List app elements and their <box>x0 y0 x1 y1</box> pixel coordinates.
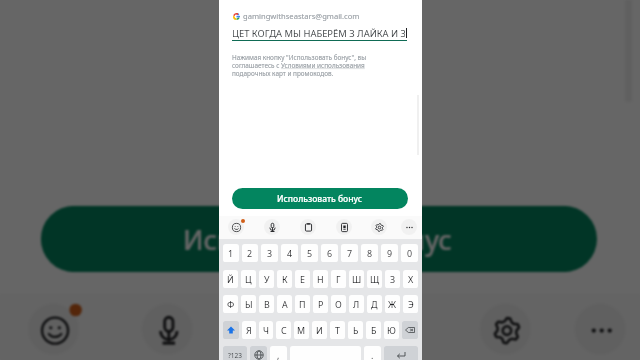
staticText: Р <box>318 298 324 310</box>
button[interactable]: Ы <box>241 295 256 313</box>
staticText: Ц <box>245 273 252 285</box>
staticText: Использовать бонус <box>277 193 363 205</box>
button[interactable]: Stickers <box>333 216 355 238</box>
staticText: 0 <box>407 247 413 259</box>
button[interactable]: Ш <box>349 270 364 288</box>
button[interactable]: Ч <box>259 321 273 339</box>
staticText: Д <box>371 298 378 310</box>
staticText: gamingwithseastars@gmail.com <box>243 11 360 21</box>
staticText: К <box>282 273 288 285</box>
button[interactable]: Change language <box>250 346 267 360</box>
button[interactable]: Э <box>403 295 418 313</box>
staticText: Б <box>371 324 377 336</box>
staticText: ЦЕТ КОГДА МЫ НАБЕРЁМ З ЛАЙКА И З <box>233 27 405 40</box>
staticText: Е <box>300 273 305 285</box>
button[interactable]: Ж <box>385 295 400 313</box>
staticText: Ы <box>245 298 253 310</box>
staticText: С <box>281 324 287 336</box>
staticText: Ч <box>263 324 269 336</box>
staticText: 5 <box>307 247 313 259</box>
button[interactable]: Settings <box>471 294 540 360</box>
button[interactable]: О <box>331 295 346 313</box>
button[interactable]: Т <box>330 321 345 339</box>
button[interactable]: Е <box>295 270 310 288</box>
button[interactable]: Settings <box>368 216 390 238</box>
staticText: 4 <box>287 247 293 259</box>
button[interactable]: Р <box>313 295 328 313</box>
button[interactable]: Voice input <box>132 294 202 360</box>
staticText: Ф <box>227 298 235 310</box>
button[interactable]: 1 <box>223 244 239 262</box>
button[interactable]: И <box>312 321 327 339</box>
button[interactable]: Voice input <box>261 216 283 238</box>
button[interactable]: Ф <box>223 295 238 313</box>
button[interactable]: 7 <box>341 244 358 262</box>
button[interactable]: Backspace <box>402 321 418 339</box>
button[interactable]: Shift <box>223 321 239 339</box>
button[interactable]: С <box>276 321 291 339</box>
button[interactable]: Clipboard <box>246 294 316 360</box>
staticText: . <box>371 349 374 360</box>
button[interactable]: Использовать бонус <box>41 206 597 272</box>
staticText: О <box>335 298 342 310</box>
staticText: Я <box>246 324 252 336</box>
staticText: Ю <box>387 324 396 336</box>
staticText: Т <box>335 324 340 336</box>
button[interactable]: Н <box>313 270 328 288</box>
button[interactable]: Ь <box>348 321 363 339</box>
staticText: ?123 <box>228 351 242 360</box>
staticText: В <box>264 298 270 310</box>
staticText: Ь <box>353 324 359 336</box>
staticText: Н <box>317 273 324 285</box>
button[interactable]: А <box>277 295 292 313</box>
staticText: 6 <box>327 247 333 259</box>
staticText: Х <box>408 273 414 285</box>
staticText: Э <box>408 298 414 310</box>
button[interactable]: Г <box>331 270 346 288</box>
button[interactable]: 9 <box>381 244 398 262</box>
button[interactable]: Х <box>403 270 418 288</box>
button[interactable]: М <box>294 321 309 339</box>
staticText: Й <box>227 273 234 285</box>
button[interactable]: 2 <box>242 244 258 262</box>
button[interactable]: Emoji <box>225 216 247 238</box>
button[interactable]: Stickers <box>360 294 429 360</box>
button[interactable]: К <box>277 270 292 288</box>
button[interactable]: Enter <box>384 346 418 360</box>
button[interactable]: 4 <box>281 244 298 262</box>
button[interactable]: Б <box>366 321 381 339</box>
staticText: А <box>282 298 288 310</box>
staticText: , <box>277 349 280 360</box>
button[interactable]: Л <box>349 295 364 313</box>
button[interactable]: 0 <box>401 244 418 262</box>
staticText: 3 <box>267 247 273 259</box>
staticText: Г <box>336 273 341 285</box>
button[interactable]: Й <box>223 270 238 288</box>
staticText: М <box>297 324 306 336</box>
button[interactable]: Использовать бонус <box>232 188 408 209</box>
button[interactable]: 3 <box>261 244 278 262</box>
button[interactable]: З <box>385 270 400 288</box>
button[interactable]: 8 <box>361 244 378 262</box>
button[interactable]: Д <box>367 295 382 313</box>
button[interactable]: П <box>295 295 310 313</box>
button[interactable]: 6 <box>321 244 338 262</box>
button[interactable]: ?123 <box>223 346 247 360</box>
button[interactable]: У <box>259 270 274 288</box>
button[interactable]: 5 <box>301 244 318 262</box>
button[interactable]: Ю <box>384 321 399 339</box>
button[interactable]: Clipboard <box>297 216 319 238</box>
staticText: У <box>264 273 270 285</box>
staticText: Щ <box>370 273 380 285</box>
button[interactable]: More options <box>398 216 420 238</box>
button[interactable]: В <box>259 295 274 313</box>
button[interactable]: Ц <box>241 270 256 288</box>
staticText: Ж <box>388 298 397 310</box>
button[interactable]: Emoji <box>19 294 88 360</box>
button[interactable]: . <box>364 346 381 360</box>
button[interactable]: More options <box>565 294 635 360</box>
button[interactable]: Я <box>242 321 256 339</box>
button[interactable]: Щ <box>367 270 382 288</box>
button[interactable]: , <box>270 346 287 360</box>
